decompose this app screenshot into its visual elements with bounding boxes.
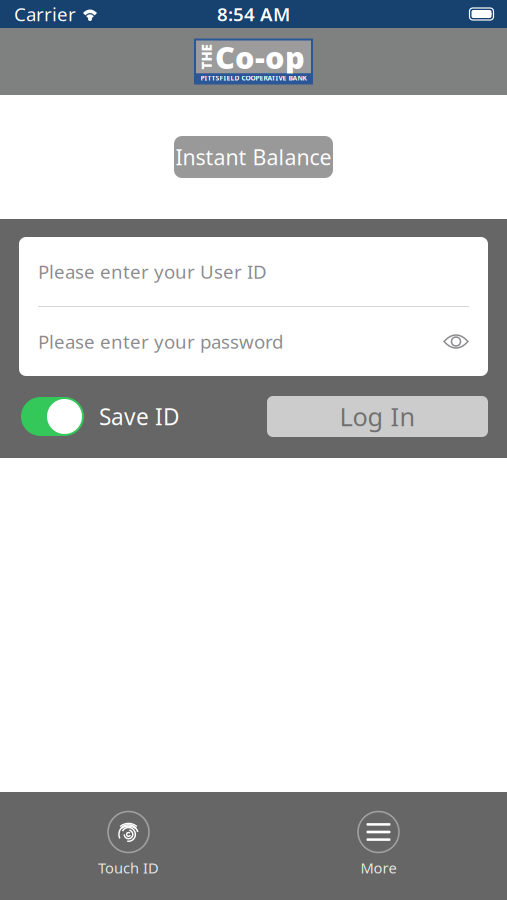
staticText: Please enter your User ID — [38, 259, 267, 284]
staticText: Instant Balance — [175, 143, 331, 171]
staticText: Please enter your password — [38, 329, 283, 354]
staticText: THE — [194, 48, 219, 66]
button[interactable]: Save ID — [19, 397, 84, 436]
staticText: PITTSFIELD COOPERATIVE BANK — [200, 74, 306, 82]
button[interactable]: Show password — [443, 331, 469, 351]
staticText: 8:54 AM — [217, 2, 290, 26]
button[interactable]: Log In — [267, 396, 488, 437]
button[interactable]: Touch ID — [76, 792, 180, 900]
staticText: Carrier — [14, 2, 76, 26]
staticText: Save ID — [99, 401, 180, 431]
staticText: Co-op — [215, 37, 305, 77]
button[interactable]: Instant Balance — [174, 136, 333, 178]
staticText: More — [360, 858, 396, 877]
staticText: Touch ID — [98, 858, 159, 877]
staticText: Log In — [339, 400, 415, 433]
button[interactable]: More — [326, 792, 430, 900]
